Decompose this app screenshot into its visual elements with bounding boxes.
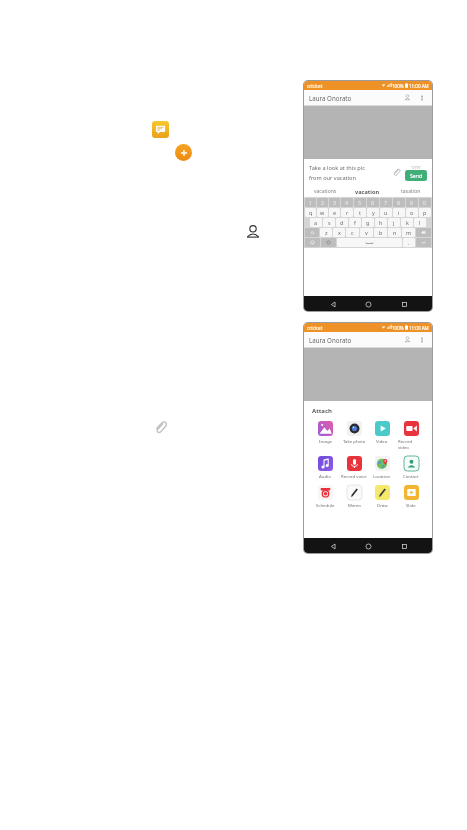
button[interactable]: Memo: [341, 484, 367, 509]
button[interactable]: Key: [305, 238, 320, 247]
staticText: vacation: [355, 188, 380, 196]
button[interactable]: z: [320, 228, 332, 237]
button[interactable]: l: [414, 218, 426, 227]
button[interactable]: Messages: [152, 121, 169, 138]
button[interactable]: .: [403, 238, 415, 247]
button[interactable]: r: [341, 208, 353, 217]
button[interactable]: p: [419, 208, 431, 217]
button[interactable]: t: [354, 208, 366, 217]
button[interactable]: Home: [361, 539, 375, 553]
button[interactable]: Draw: [369, 484, 395, 509]
button[interactable]: Send: [405, 170, 427, 181]
button[interactable]: o: [406, 208, 418, 217]
staticText: taxation: [401, 188, 421, 195]
staticText: Location: [373, 473, 391, 479]
button[interactable]: c: [346, 228, 359, 237]
button[interactable]: vacations: [304, 188, 346, 195]
button[interactable]: Record voice: [341, 455, 367, 480]
button[interactable]: 4: [341, 198, 353, 207]
button[interactable]: g: [362, 218, 374, 227]
button[interactable]: s: [323, 218, 335, 227]
staticText: n: [393, 229, 397, 236]
button[interactable]: More options: [416, 92, 427, 103]
staticText: 3: [333, 199, 337, 206]
button[interactable]: q: [305, 208, 316, 217]
button[interactable]: Add contact: [402, 334, 413, 345]
button[interactable]: w: [317, 208, 328, 217]
button[interactable]: 0: [419, 198, 431, 207]
staticText: 11:00 AM: [409, 83, 429, 89]
button[interactable]: h: [375, 218, 387, 227]
button[interactable]: 3: [329, 198, 340, 207]
button[interactable]: 8: [393, 198, 405, 207]
button[interactable]: Key: [416, 238, 431, 247]
staticText: Draw: [377, 502, 388, 508]
button[interactable]: Location: [369, 455, 395, 480]
staticText: 2: [321, 199, 325, 206]
button[interactable]: 2: [317, 198, 328, 207]
button[interactable]: 9: [406, 198, 418, 207]
button[interactable]: Video: [369, 420, 395, 445]
button[interactable]: 5: [354, 198, 366, 207]
staticText: y: [372, 209, 375, 216]
button[interactable]: Contact: [398, 455, 424, 480]
staticText: z: [325, 229, 328, 236]
button[interactable]: n: [388, 228, 401, 237]
staticText: t: [359, 209, 361, 216]
button[interactable]: Record video: [398, 420, 424, 451]
button[interactable]: j: [388, 218, 400, 227]
button[interactable]: 1: [305, 198, 316, 207]
button[interactable]: Slide: [398, 484, 424, 509]
staticText: w: [320, 209, 325, 216]
button[interactable]: Contact: [243, 222, 263, 242]
staticText: Schedule: [316, 502, 335, 508]
button[interactable]: k: [401, 218, 413, 227]
button[interactable]: Image: [312, 420, 338, 445]
button[interactable]: Attach file: [151, 418, 170, 437]
button[interactable]: d: [336, 218, 348, 227]
button[interactable]: Attach: [390, 166, 403, 179]
staticText: a: [314, 219, 318, 226]
button[interactable]: Take photo: [341, 420, 367, 445]
button[interactable]: Back: [326, 297, 340, 311]
staticText: f: [354, 219, 356, 226]
button[interactable]: m: [402, 228, 415, 237]
staticText: 1: [309, 199, 313, 206]
button[interactable]: y: [367, 208, 379, 217]
button[interactable]: u: [380, 208, 392, 217]
button[interactable]: vacation: [346, 188, 389, 196]
button[interactable]: Recents: [397, 539, 411, 553]
staticText: Laura Onorato: [309, 336, 352, 344]
staticText: cricket: [307, 83, 323, 89]
button[interactable]: i: [393, 208, 405, 217]
staticText: .: [408, 239, 410, 246]
staticText: 100%: [392, 325, 404, 331]
staticText: b: [379, 229, 383, 236]
button[interactable]: New message: [175, 144, 192, 161]
staticText: l: [419, 219, 421, 226]
button[interactable]: x: [333, 228, 345, 237]
button[interactable]: Audio: [312, 455, 338, 480]
button[interactable]: Key: [416, 228, 431, 237]
button[interactable]: Key: [305, 228, 319, 237]
button[interactable]: 6: [367, 198, 379, 207]
button[interactable]: e: [329, 208, 340, 217]
staticText: Laura Onorato: [309, 94, 352, 102]
button[interactable]: Space: [337, 238, 402, 247]
button[interactable]: a: [310, 218, 322, 227]
button[interactable]: b: [374, 228, 387, 237]
button[interactable]: taxation: [389, 188, 432, 195]
button[interactable]: v: [360, 228, 373, 237]
button[interactable]: Recents: [397, 297, 411, 311]
button[interactable]: Schedule: [312, 484, 338, 509]
staticText: k: [406, 219, 409, 226]
button[interactable]: f: [349, 218, 361, 227]
button[interactable]: Home: [361, 297, 375, 311]
button[interactable]: Add contact: [402, 92, 413, 103]
staticText: Attach: [312, 407, 332, 415]
button[interactable]: Key: [321, 238, 336, 247]
button[interactable]: Back: [326, 539, 340, 553]
staticText: from our vacation: [309, 174, 356, 182]
button[interactable]: 7: [380, 198, 392, 207]
button[interactable]: More options: [416, 334, 427, 345]
